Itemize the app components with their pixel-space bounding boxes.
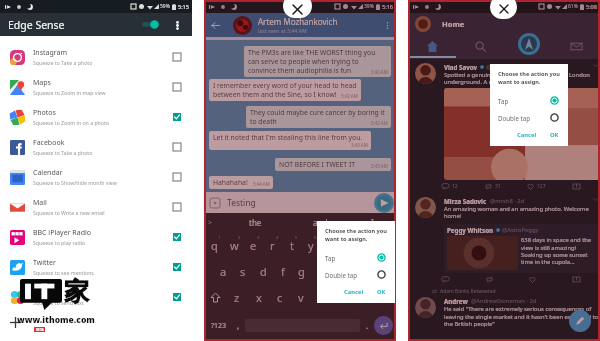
button[interactable]: Home [408, 34, 456, 59]
button[interactable]: Facebook [0, 132, 192, 162]
button[interactable]: , [231, 310, 245, 341]
button[interactable]: Cancel [342, 288, 366, 296]
button[interactable]: 3 [244, 232, 263, 258]
staticText: g [298, 264, 305, 279]
button[interactable]: ?123 [207, 310, 231, 341]
button[interactable]: 6 [301, 232, 320, 258]
button[interactable]: l [368, 258, 387, 284]
staticText: Squeeze to Write a new email [33, 209, 105, 216]
button[interactable]: 0 [377, 232, 396, 258]
button[interactable]: Double tap [490, 109, 568, 126]
staticText: e [250, 238, 257, 253]
button[interactable]: Close [283, 0, 312, 18]
button[interactable]: Moments [518, 33, 540, 55]
button[interactable]: Instagram [0, 42, 192, 72]
button[interactable]: Retweet [485, 183, 501, 190]
button[interactable]: g [292, 258, 311, 284]
button[interactable]: More options [379, 17, 396, 34]
button[interactable]: Send [374, 193, 394, 213]
staticText: ?123 [211, 321, 227, 331]
button[interactable]: 7 [320, 232, 339, 258]
button[interactable]: s [233, 258, 253, 284]
staticText: a [220, 264, 227, 279]
button[interactable]: Let it noted that I'm stealing this line… [209, 131, 371, 150]
staticText: 1 [218, 235, 221, 240]
button[interactable]: Tap [490, 92, 568, 109]
button[interactable]: Share [573, 183, 580, 190]
button[interactable]: 2 [224, 232, 244, 258]
button[interactable]: Profile [415, 16, 431, 32]
button[interactable]: c [269, 284, 290, 310]
button[interactable]: Like [527, 183, 546, 190]
button[interactable]: Maps [0, 72, 192, 102]
button[interactable]: Twitter [0, 252, 192, 282]
button[interactable]: Like [529, 276, 536, 283]
button[interactable]: Hahahaha! [209, 176, 273, 189]
button[interactable]: Calendar [0, 162, 192, 192]
button[interactable]: Search [456, 34, 504, 59]
button[interactable]: OK [548, 131, 561, 139]
staticText: OK [377, 288, 386, 296]
staticText: f [281, 264, 285, 279]
button[interactable]: Slack [0, 282, 192, 312]
button[interactable]: Tap [317, 249, 395, 266]
button[interactable]: f [273, 258, 292, 284]
button[interactable]: k [349, 258, 368, 284]
button[interactable]: Back [207, 17, 224, 34]
button[interactable]: NOT BEFORE I TWEET IT [275, 158, 391, 171]
button[interactable]: a [213, 258, 233, 284]
button[interactable]: Moments [504, 34, 552, 59]
button[interactable]: Share [573, 276, 580, 283]
button[interactable]: Backspace [374, 284, 396, 310]
staticText: 59% [160, 3, 170, 10]
button[interactable]: Retweet [486, 276, 493, 283]
button[interactable]: 9 [358, 232, 377, 258]
staticText: 5:08 [586, 3, 597, 10]
button[interactable]: Cancel [515, 131, 539, 139]
button[interactable]: Shift [204, 284, 226, 310]
button[interactable]: h [311, 258, 330, 284]
staticText: NOT BEFORE I TWEET IT [279, 160, 355, 169]
staticText: 2 [238, 235, 241, 240]
button[interactable]: n [332, 284, 353, 310]
button[interactable]: Mirza Sadovic [408, 193, 600, 286]
button[interactable]: Messages [552, 34, 600, 59]
button[interactable]: More options [168, 16, 186, 34]
button[interactable]: j [330, 258, 349, 284]
staticText: and [313, 217, 328, 228]
button[interactable]: 1 [204, 232, 224, 258]
staticText: Artem Mozhankovich [258, 16, 338, 27]
button[interactable]: Photos [0, 102, 192, 132]
button[interactable]: z [226, 284, 248, 310]
staticText: 39% [364, 3, 374, 10]
button[interactable]: b [311, 284, 332, 310]
button[interactable]: Reply [442, 276, 449, 283]
button[interactable]: v [290, 284, 311, 310]
button[interactable]: m [353, 284, 374, 310]
staticText: Mirza Sadovic [444, 197, 487, 205]
button[interactable]: Toggle Edge Sense [139, 13, 161, 36]
button[interactable]: Mail [0, 192, 192, 222]
button[interactable]: 4 [263, 232, 282, 258]
button[interactable]: I remember every word of your head to he… [209, 79, 361, 101]
button[interactable]: 8 [339, 232, 358, 258]
button[interactable]: d [253, 258, 273, 284]
button[interactable]: Close [490, 0, 517, 19]
staticText: 3:42 AM [371, 120, 388, 126]
button[interactable]: Double tap [317, 266, 395, 283]
button[interactable]: OK [375, 288, 388, 296]
button[interactable]: Reply [442, 183, 458, 190]
button[interactable]: . [360, 310, 374, 341]
button[interactable]: They could maybe cure cancer by boring i… [246, 106, 391, 128]
button[interactable]: Adam Banks Retweeted [408, 286, 600, 327]
button[interactable]: Vlad Savov [408, 59, 600, 193]
staticText: 127 [537, 183, 546, 190]
button[interactable]: The PM3s are like THE WORST thing you ca… [244, 46, 391, 77]
button[interactable]: x [248, 284, 269, 310]
button[interactable]: Enter [374, 316, 393, 335]
button[interactable]: 5 [282, 232, 301, 258]
button[interactable]: Compose Tweet [569, 310, 591, 332]
button[interactable]: BBC iPlayer Radio [0, 222, 192, 252]
staticText: They could maybe cure cancer by boring i… [250, 108, 388, 126]
